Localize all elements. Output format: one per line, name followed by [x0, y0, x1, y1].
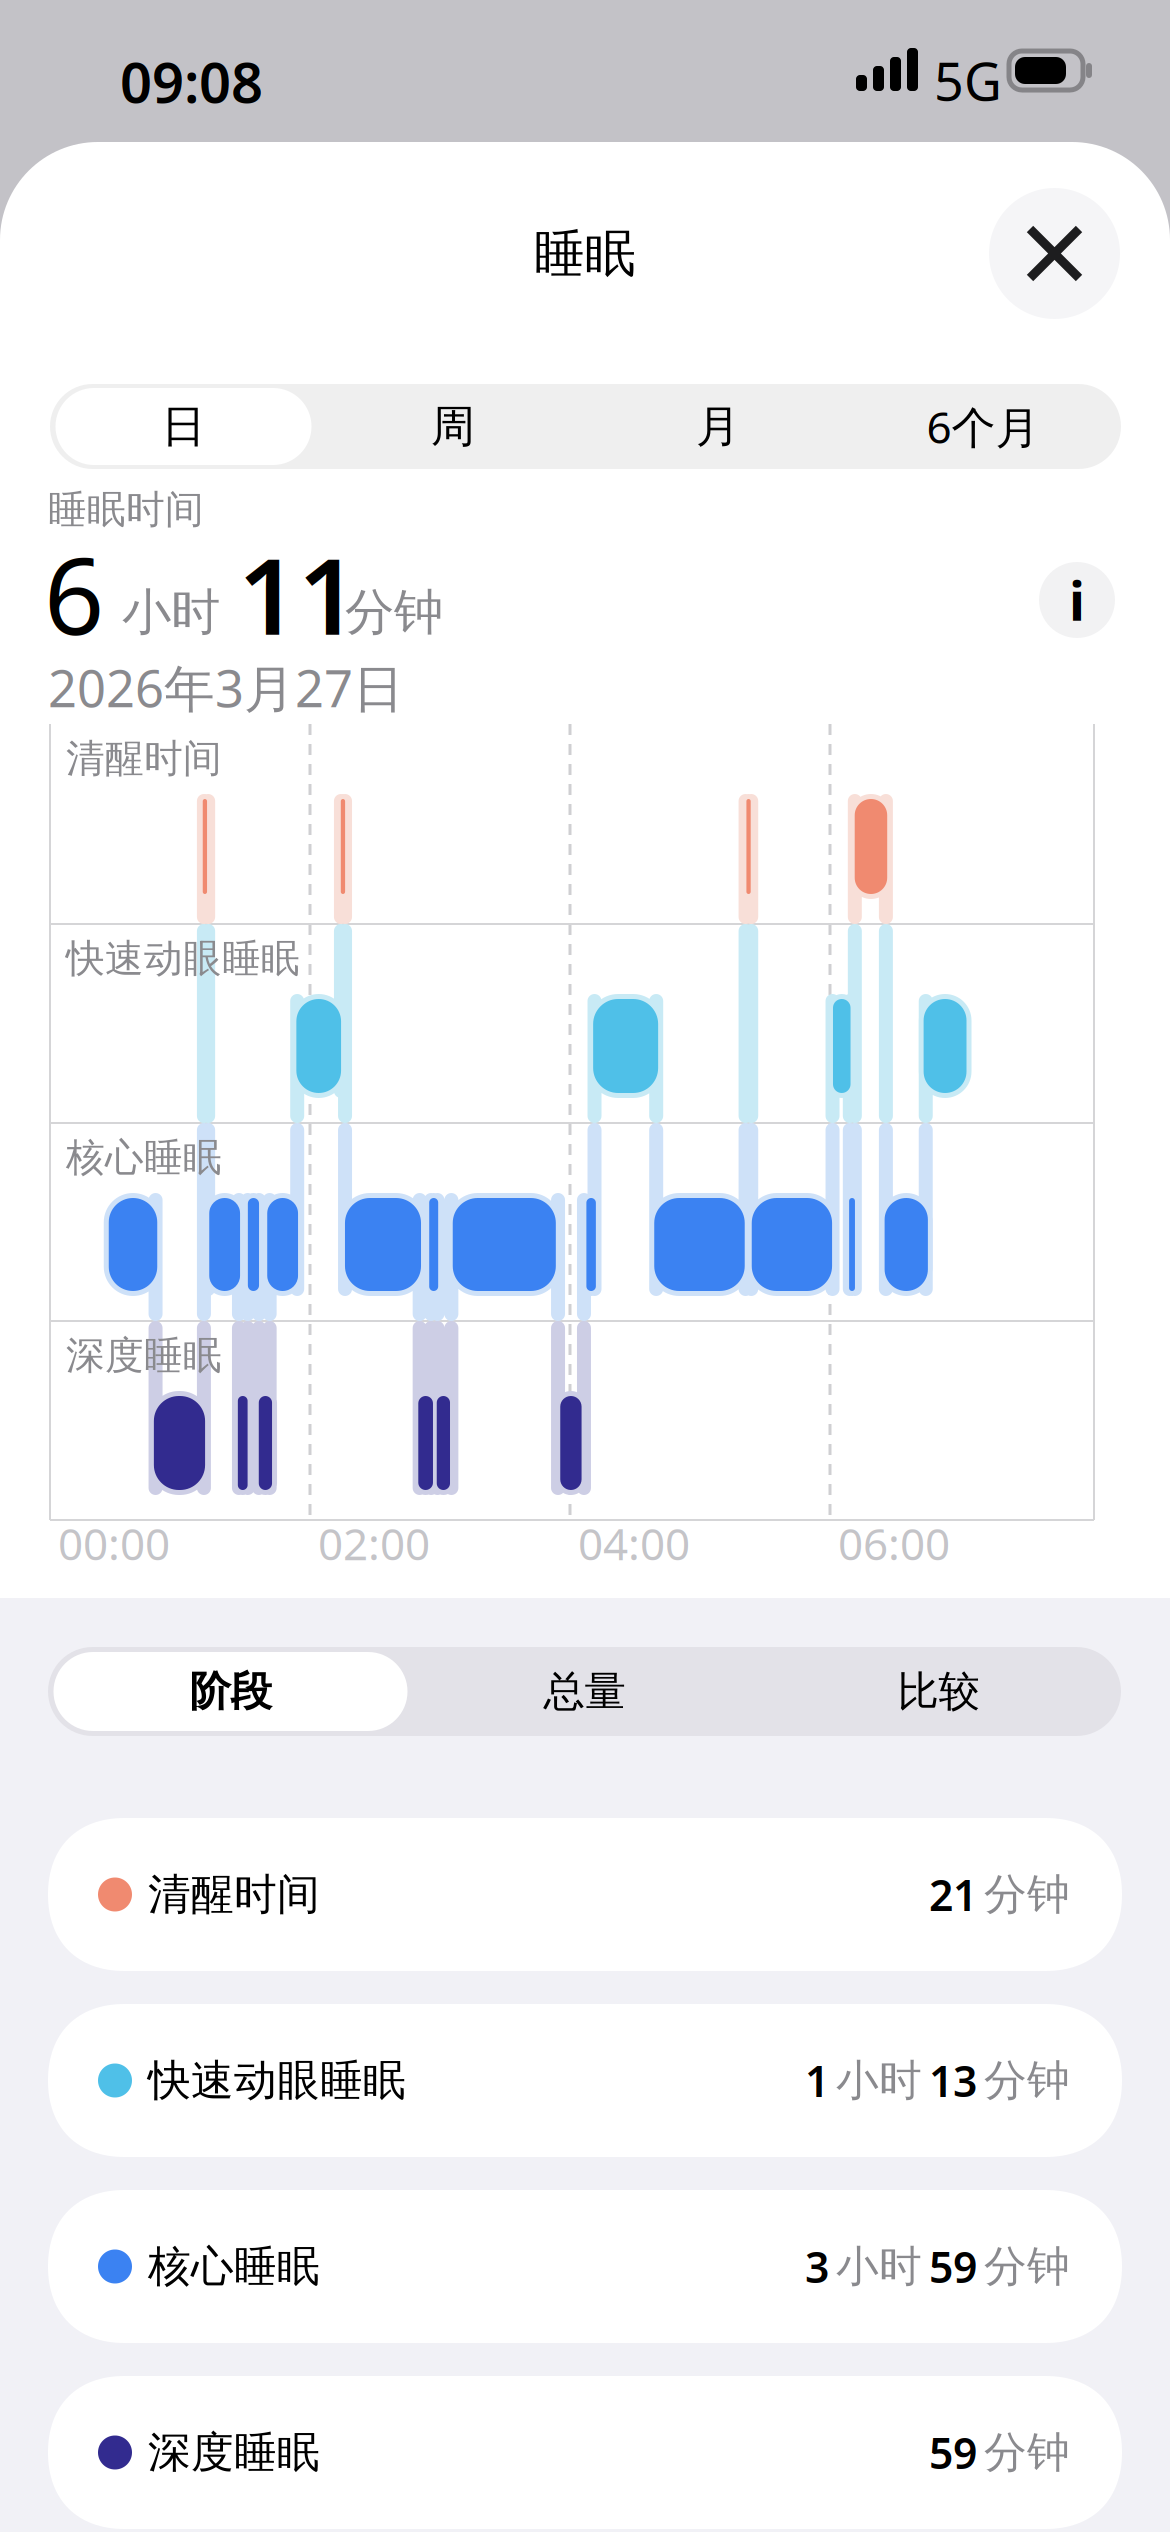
staticText: 1 — [805, 2052, 829, 2109]
staticText: 核心睡眠 — [148, 2240, 320, 2293]
staticText: 比较 — [897, 1666, 979, 1717]
button[interactable]: 核心睡眠 — [48, 2190, 1122, 2343]
staticText: 5G — [934, 46, 1002, 115]
staticText: 总量 — [543, 1666, 625, 1717]
staticText: 小时 — [836, 2240, 922, 2293]
button[interactable]: 深度睡眠 — [48, 2376, 1122, 2529]
staticText: 6 — [44, 524, 104, 664]
staticText: 快速动眼睡眠 — [66, 935, 300, 982]
staticText: 3 — [805, 2238, 829, 2295]
staticText: 睡眠时间 — [48, 486, 204, 533]
staticText: 09:08 — [120, 44, 263, 118]
staticText: 深度睡眠 — [66, 1332, 222, 1379]
staticText: 02:00 — [318, 1514, 430, 1572]
staticText: 深度睡眠 — [148, 2426, 320, 2479]
button[interactable]: 6个月 — [850, 388, 1115, 465]
staticText: 小时 — [836, 2054, 922, 2107]
staticText: 睡眠 — [534, 223, 636, 285]
staticText: 04:00 — [578, 1514, 690, 1572]
button[interactable]: 周 — [320, 388, 585, 465]
button[interactable]: 比较 — [761, 1652, 1115, 1731]
staticText: 6个月 — [926, 397, 1039, 456]
button[interactable]: 总量 — [407, 1652, 761, 1731]
staticText: 21 — [929, 1866, 977, 1923]
staticText: 小时 — [122, 582, 220, 643]
staticText: 分钟 — [984, 2240, 1070, 2293]
button[interactable]: 阶段 — [53, 1652, 407, 1731]
staticText: 分钟 — [984, 2054, 1070, 2107]
staticText: 月 — [696, 399, 740, 453]
staticText: 阶段 — [189, 1666, 271, 1717]
staticText: 59 — [929, 2238, 977, 2295]
staticText: 分钟 — [984, 2426, 1070, 2479]
staticText: 清醒时间 — [148, 1868, 320, 1921]
staticText: 快速动眼睡眠 — [148, 2054, 406, 2107]
staticText: 2026年3月27日 — [48, 654, 404, 721]
staticText: 日 — [161, 399, 205, 453]
staticText: 06:00 — [838, 1514, 950, 1572]
staticText: 13 — [929, 2052, 977, 2109]
staticText: 11 — [238, 524, 358, 664]
staticText: 清醒时间 — [66, 735, 222, 782]
staticText: 59 — [929, 2424, 977, 2481]
staticText: i — [1069, 565, 1085, 635]
button[interactable]: 信息 — [1039, 562, 1115, 638]
button[interactable]: 关闭 — [989, 188, 1120, 319]
button[interactable]: 月 — [585, 388, 850, 465]
staticText: 00:00 — [58, 1514, 170, 1572]
button[interactable]: 清醒时间 — [48, 1818, 1122, 1971]
staticText: 周 — [431, 399, 475, 453]
staticText: 分钟 — [345, 582, 443, 643]
button[interactable]: 快速动眼睡眠 — [48, 2004, 1122, 2157]
staticText: 分钟 — [984, 1868, 1070, 1921]
button[interactable]: 日 — [55, 388, 320, 465]
staticText: 核心睡眠 — [66, 1134, 222, 1181]
